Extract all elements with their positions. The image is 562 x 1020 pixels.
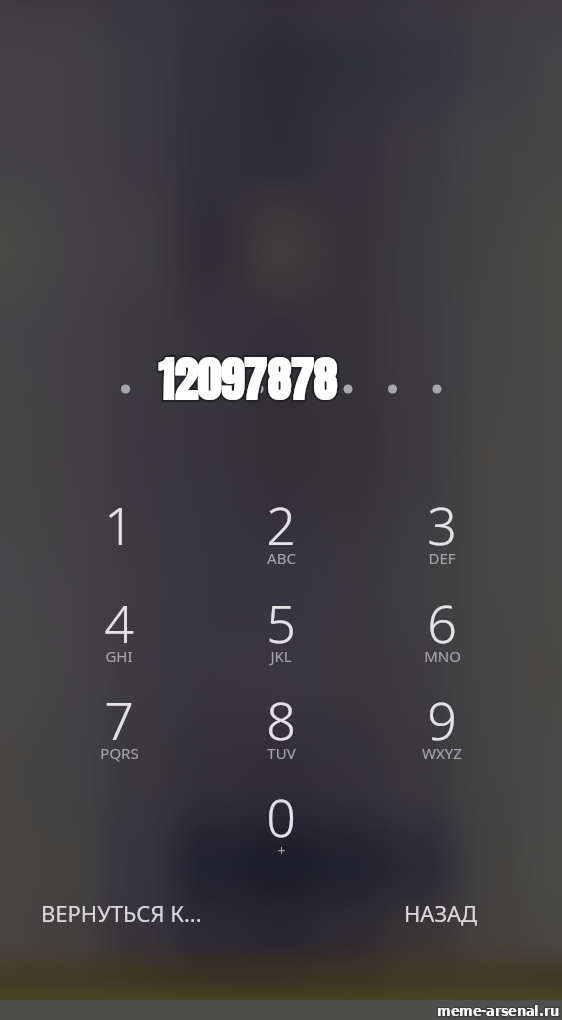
button[interactable]: ВЕРНУТЬСЯ К... (18, 891, 218, 935)
staticText: TUV (267, 743, 296, 763)
button[interactable]: 7 (64, 680, 174, 770)
staticText: 4 (104, 587, 134, 658)
button[interactable]: 4 (64, 583, 174, 673)
staticText: 7 (104, 684, 134, 755)
button[interactable]: 3 (387, 485, 497, 575)
button[interactable]: 0 (226, 777, 336, 867)
staticText: 3 (427, 489, 457, 560)
staticText: PQRS (100, 743, 139, 763)
staticText: + (277, 840, 286, 860)
staticText: DEF (428, 548, 456, 568)
button[interactable]: 8 (226, 680, 336, 770)
staticText: 5 (266, 587, 296, 658)
button[interactable]: НАЗАД (384, 891, 498, 935)
button[interactable]: 5 (226, 583, 336, 673)
button[interactable]: 9 (387, 680, 497, 770)
staticText: 1 (104, 489, 134, 560)
button[interactable]: 1 (64, 485, 174, 575)
staticText: WXYZ (422, 743, 462, 763)
staticText: 9 (427, 684, 457, 755)
staticText: 8 (266, 684, 296, 755)
staticText: 2 (266, 489, 296, 560)
staticText: MNO (424, 646, 461, 666)
staticText: 0 (266, 781, 296, 852)
button[interactable]: 6 (387, 583, 497, 673)
button[interactable]: 2 (226, 485, 336, 575)
staticText: JKL (270, 646, 292, 666)
staticText: 6 (427, 587, 457, 658)
staticText: GHI (105, 646, 133, 666)
staticText: ВЕРНУТЬСЯ К... (41, 898, 202, 928)
staticText: ABC (267, 548, 296, 568)
staticText: НАЗАД (404, 898, 478, 928)
